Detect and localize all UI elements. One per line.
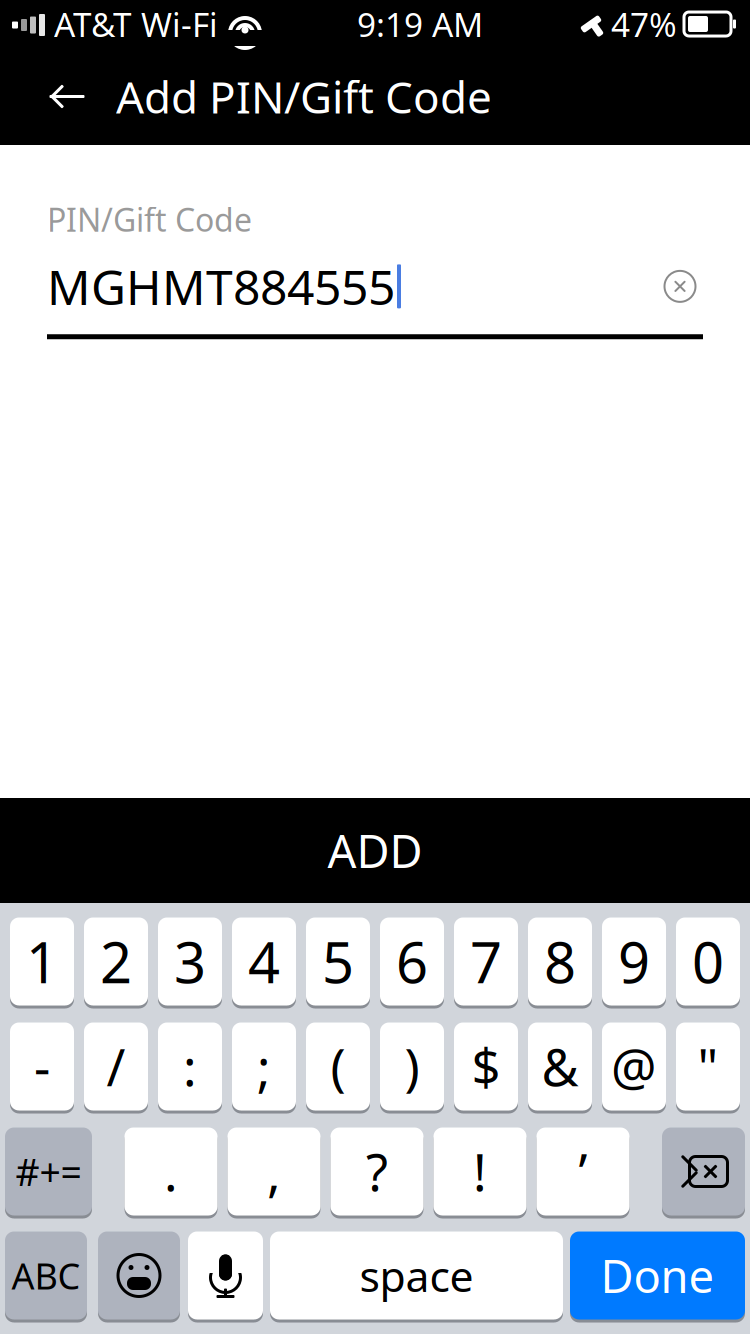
button[interactable]: &: [528, 1021, 592, 1112]
staticText: ’: [578, 1138, 587, 1205]
button[interactable]: #+=: [5, 1126, 92, 1217]
button[interactable]: Back: [32, 61, 102, 131]
staticText: !: [473, 1138, 487, 1205]
button[interactable]: @: [602, 1021, 666, 1112]
button[interactable]: ?: [330, 1126, 423, 1217]
button[interactable]: 5: [306, 916, 370, 1007]
staticText: 5: [322, 924, 354, 999]
button[interactable]: space: [270, 1230, 563, 1321]
staticText: (: [330, 1033, 345, 1100]
button[interactable]: $: [454, 1021, 518, 1112]
button[interactable]: 4: [232, 916, 296, 1007]
staticText: 7: [470, 924, 502, 999]
staticText: MGHMT884555: [47, 254, 395, 318]
staticText: ABC: [11, 1252, 80, 1299]
button[interactable]: ,: [227, 1126, 320, 1217]
button[interactable]: :: [158, 1021, 222, 1112]
staticText: ): [404, 1033, 419, 1100]
button[interactable]: Clear text: [657, 263, 703, 309]
staticText: 2: [100, 924, 132, 999]
staticText: .: [164, 1138, 178, 1205]
button[interactable]: ): [380, 1021, 444, 1112]
staticText: @: [611, 1033, 657, 1100]
staticText: 47%: [611, 2, 677, 46]
staticText: Done: [600, 1245, 714, 1306]
staticText: ;: [257, 1033, 271, 1100]
button[interactable]: Emoji: [98, 1230, 180, 1321]
button[interactable]: .: [124, 1126, 217, 1217]
button[interactable]: /: [84, 1021, 148, 1112]
staticText: ": [697, 1033, 718, 1100]
button[interactable]: -: [10, 1021, 74, 1112]
button[interactable]: ABC: [5, 1230, 87, 1321]
button[interactable]: 3: [158, 916, 222, 1007]
staticText: 8: [544, 924, 576, 999]
button[interactable]: (: [306, 1021, 370, 1112]
staticText: /: [106, 1033, 125, 1100]
button[interactable]: ;: [232, 1021, 296, 1112]
staticText: 9:19 AM: [357, 2, 483, 46]
button[interactable]: Done: [570, 1230, 745, 1321]
staticText: ,: [267, 1138, 281, 1205]
staticText: AT&T Wi-Fi: [54, 2, 218, 46]
button[interactable]: 2: [84, 916, 148, 1007]
button[interactable]: 7: [454, 916, 518, 1007]
staticText: space: [359, 1247, 473, 1304]
staticText: 0: [692, 924, 724, 999]
staticText: 4: [248, 924, 280, 999]
button[interactable]: ADD: [0, 798, 750, 903]
button[interactable]: 9: [602, 916, 666, 1007]
staticText: Add PIN/Gift Code: [116, 67, 492, 126]
staticText: -: [34, 1033, 50, 1100]
button[interactable]: Dictation: [188, 1230, 263, 1321]
staticText: &: [541, 1033, 578, 1100]
button[interactable]: 1: [10, 916, 74, 1007]
staticText: 3: [174, 924, 206, 999]
staticText: #+=: [15, 1147, 81, 1196]
staticText: 6: [396, 924, 428, 999]
button[interactable]: 6: [380, 916, 444, 1007]
staticText: $: [471, 1033, 500, 1100]
staticText: ADD: [327, 820, 422, 881]
button[interactable]: ": [676, 1021, 740, 1112]
button[interactable]: Delete: [662, 1126, 745, 1217]
button[interactable]: 8: [528, 916, 592, 1007]
staticText: PIN/Gift Code: [47, 198, 252, 240]
button[interactable]: !: [433, 1126, 526, 1217]
button[interactable]: 0: [676, 916, 740, 1007]
staticText: ?: [366, 1138, 388, 1205]
button[interactable]: ’: [536, 1126, 629, 1217]
staticText: 9: [618, 924, 650, 999]
staticText: :: [183, 1033, 197, 1100]
staticText: 1: [26, 924, 58, 999]
